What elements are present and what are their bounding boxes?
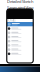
staticText: Detailed Sketch bbox=[7, 0, 33, 4]
staticText: Chats bbox=[8, 19, 15, 22]
staticText: Generated View bbox=[6, 5, 33, 10]
